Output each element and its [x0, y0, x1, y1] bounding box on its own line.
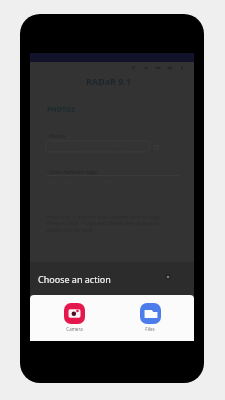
- staticText: Choose an action: [38, 273, 111, 285]
- button[interactable]: More options: [165, 274, 171, 280]
- button[interactable]: Refresh: [152, 143, 161, 152]
- button[interactable]: Delete: [154, 64, 162, 72]
- staticText: Camera: [66, 326, 83, 332]
- staticText: Files: [145, 326, 155, 332]
- staticText: Photo: [49, 132, 66, 139]
- button[interactable]: Sort: [142, 64, 150, 72]
- button[interactable]: Edit: [166, 64, 174, 72]
- button[interactable]: Camera: [63, 303, 85, 332]
- staticText: RADaR 9.1: [86, 75, 132, 87]
- button[interactable]: Files: [139, 303, 161, 332]
- button[interactable]: Add: [130, 64, 138, 72]
- staticText: PHOTOS: [47, 105, 76, 114]
- button[interactable]: More: [178, 64, 186, 72]
- staticText: User defined tags: [49, 168, 98, 175]
